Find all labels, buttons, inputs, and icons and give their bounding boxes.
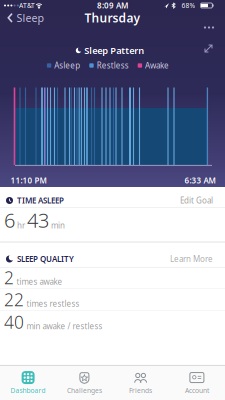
staticText: TIME ASLEEP [17, 195, 64, 206]
staticText: 11:10 PM [10, 175, 46, 186]
button[interactable]: Dashboard [0, 366, 56, 399]
button[interactable]: Friends [113, 366, 169, 399]
staticText: 6:33 AM [184, 175, 215, 186]
staticText: AT&T [19, 1, 35, 10]
staticText: min awake / restless [26, 321, 102, 331]
staticText: Account [185, 386, 209, 395]
button[interactable]: Edit Goal [180, 195, 213, 206]
staticText: Awake [145, 60, 169, 71]
button[interactable]: Learn More [170, 254, 213, 264]
button[interactable]: Sleep [3, 11, 49, 25]
staticText: 6 [4, 207, 15, 233]
staticText: times awake [16, 276, 62, 287]
button[interactable] [201, 22, 217, 32]
staticText: hr [17, 220, 25, 231]
staticText: 40 [4, 310, 24, 333]
staticText: Learn More [170, 254, 213, 264]
staticText: Thursday [84, 10, 140, 26]
staticText: Friends [129, 386, 152, 395]
staticText: times restless [26, 298, 79, 309]
staticText: Sleep Pattern [84, 44, 144, 57]
staticText: Sleep [16, 11, 44, 25]
staticText: Asleep [54, 60, 80, 71]
staticText: min [51, 220, 65, 231]
staticText: Restless [97, 60, 129, 71]
staticText: SLEEP QUALITY [17, 254, 74, 264]
staticText: 43 [27, 207, 49, 233]
staticText: Challenges [67, 386, 102, 395]
staticText: 2 [4, 266, 14, 289]
staticText: Edit Goal [180, 195, 213, 206]
button[interactable]: Account [169, 366, 225, 399]
staticText: 8:09 AM [97, 0, 128, 11]
staticText: 22 [4, 288, 24, 311]
button[interactable]: Challenges [56, 366, 112, 399]
button[interactable] [204, 44, 213, 53]
staticText: Dashboard [11, 386, 46, 395]
staticText: 68% [181, 1, 195, 10]
